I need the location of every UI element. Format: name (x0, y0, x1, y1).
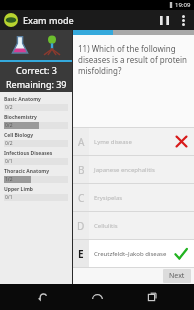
staticText: Creutzfeldt–Jakob disease (94, 250, 168, 258)
button[interactable]: Chemistry (7, 32, 33, 58)
button[interactable]: Recent apps (139, 284, 165, 310)
button[interactable]: More options (174, 11, 192, 29)
button[interactable]: A (73, 128, 194, 155)
staticText: 0/1 (5, 158, 13, 165)
button[interactable]: Home (84, 284, 110, 310)
staticText: 0/2 (5, 104, 13, 111)
staticText: 11) Which of the following diseases is a… (78, 43, 189, 76)
other: Correct (174, 247, 188, 261)
button[interactable]: Cell Biology (0, 130, 72, 148)
staticText: Next (169, 271, 185, 281)
button[interactable]: Biochemistry (0, 112, 72, 130)
staticText: Upper Limb (4, 186, 33, 193)
button[interactable]: D (73, 212, 194, 239)
staticText: Japanese encephalitis (94, 166, 168, 174)
button[interactable]: Back (29, 284, 55, 310)
staticText: 1/2 (5, 176, 13, 183)
staticText: Infectious Diseases (4, 150, 53, 157)
staticText: Lyme disease (94, 138, 168, 146)
staticText: Cellulitis (94, 222, 168, 230)
staticText: Remaining: 39 (6, 78, 67, 90)
button[interactable]: Infectious Diseases (0, 148, 72, 166)
other: App icon (4, 13, 18, 27)
button[interactable]: C (73, 184, 194, 211)
staticText: 19:09 (175, 1, 191, 9)
staticText: Erysipelas (94, 194, 168, 202)
staticText: Exam mode (23, 14, 74, 26)
staticText: Correct: 3 (16, 64, 57, 76)
staticText: Thoracic Anatomy (4, 168, 50, 175)
button[interactable]: Upper Limb (0, 184, 72, 202)
button[interactable]: B (73, 156, 194, 183)
staticText: C (78, 191, 85, 205)
staticText: Basic Anatomy (4, 96, 41, 103)
staticText: B (78, 163, 85, 177)
button[interactable]: Next (163, 269, 191, 283)
staticText: Biochemistry (4, 114, 37, 121)
staticText: E (78, 247, 84, 261)
button[interactable]: Pause (154, 10, 174, 30)
other: Incorrect (175, 135, 188, 148)
staticText: 0/1 (5, 194, 13, 201)
staticText: 0/2 (5, 122, 13, 129)
staticText: D (77, 219, 85, 233)
button[interactable]: Basic Anatomy (0, 94, 72, 112)
staticText: Cell Biology (4, 132, 34, 139)
button[interactable]: E (73, 240, 194, 267)
button[interactable]: Microbiology (39, 32, 65, 58)
staticText: 0/2 (5, 140, 13, 147)
staticText: A (78, 135, 85, 149)
button[interactable]: Thoracic Anatomy (0, 166, 72, 184)
